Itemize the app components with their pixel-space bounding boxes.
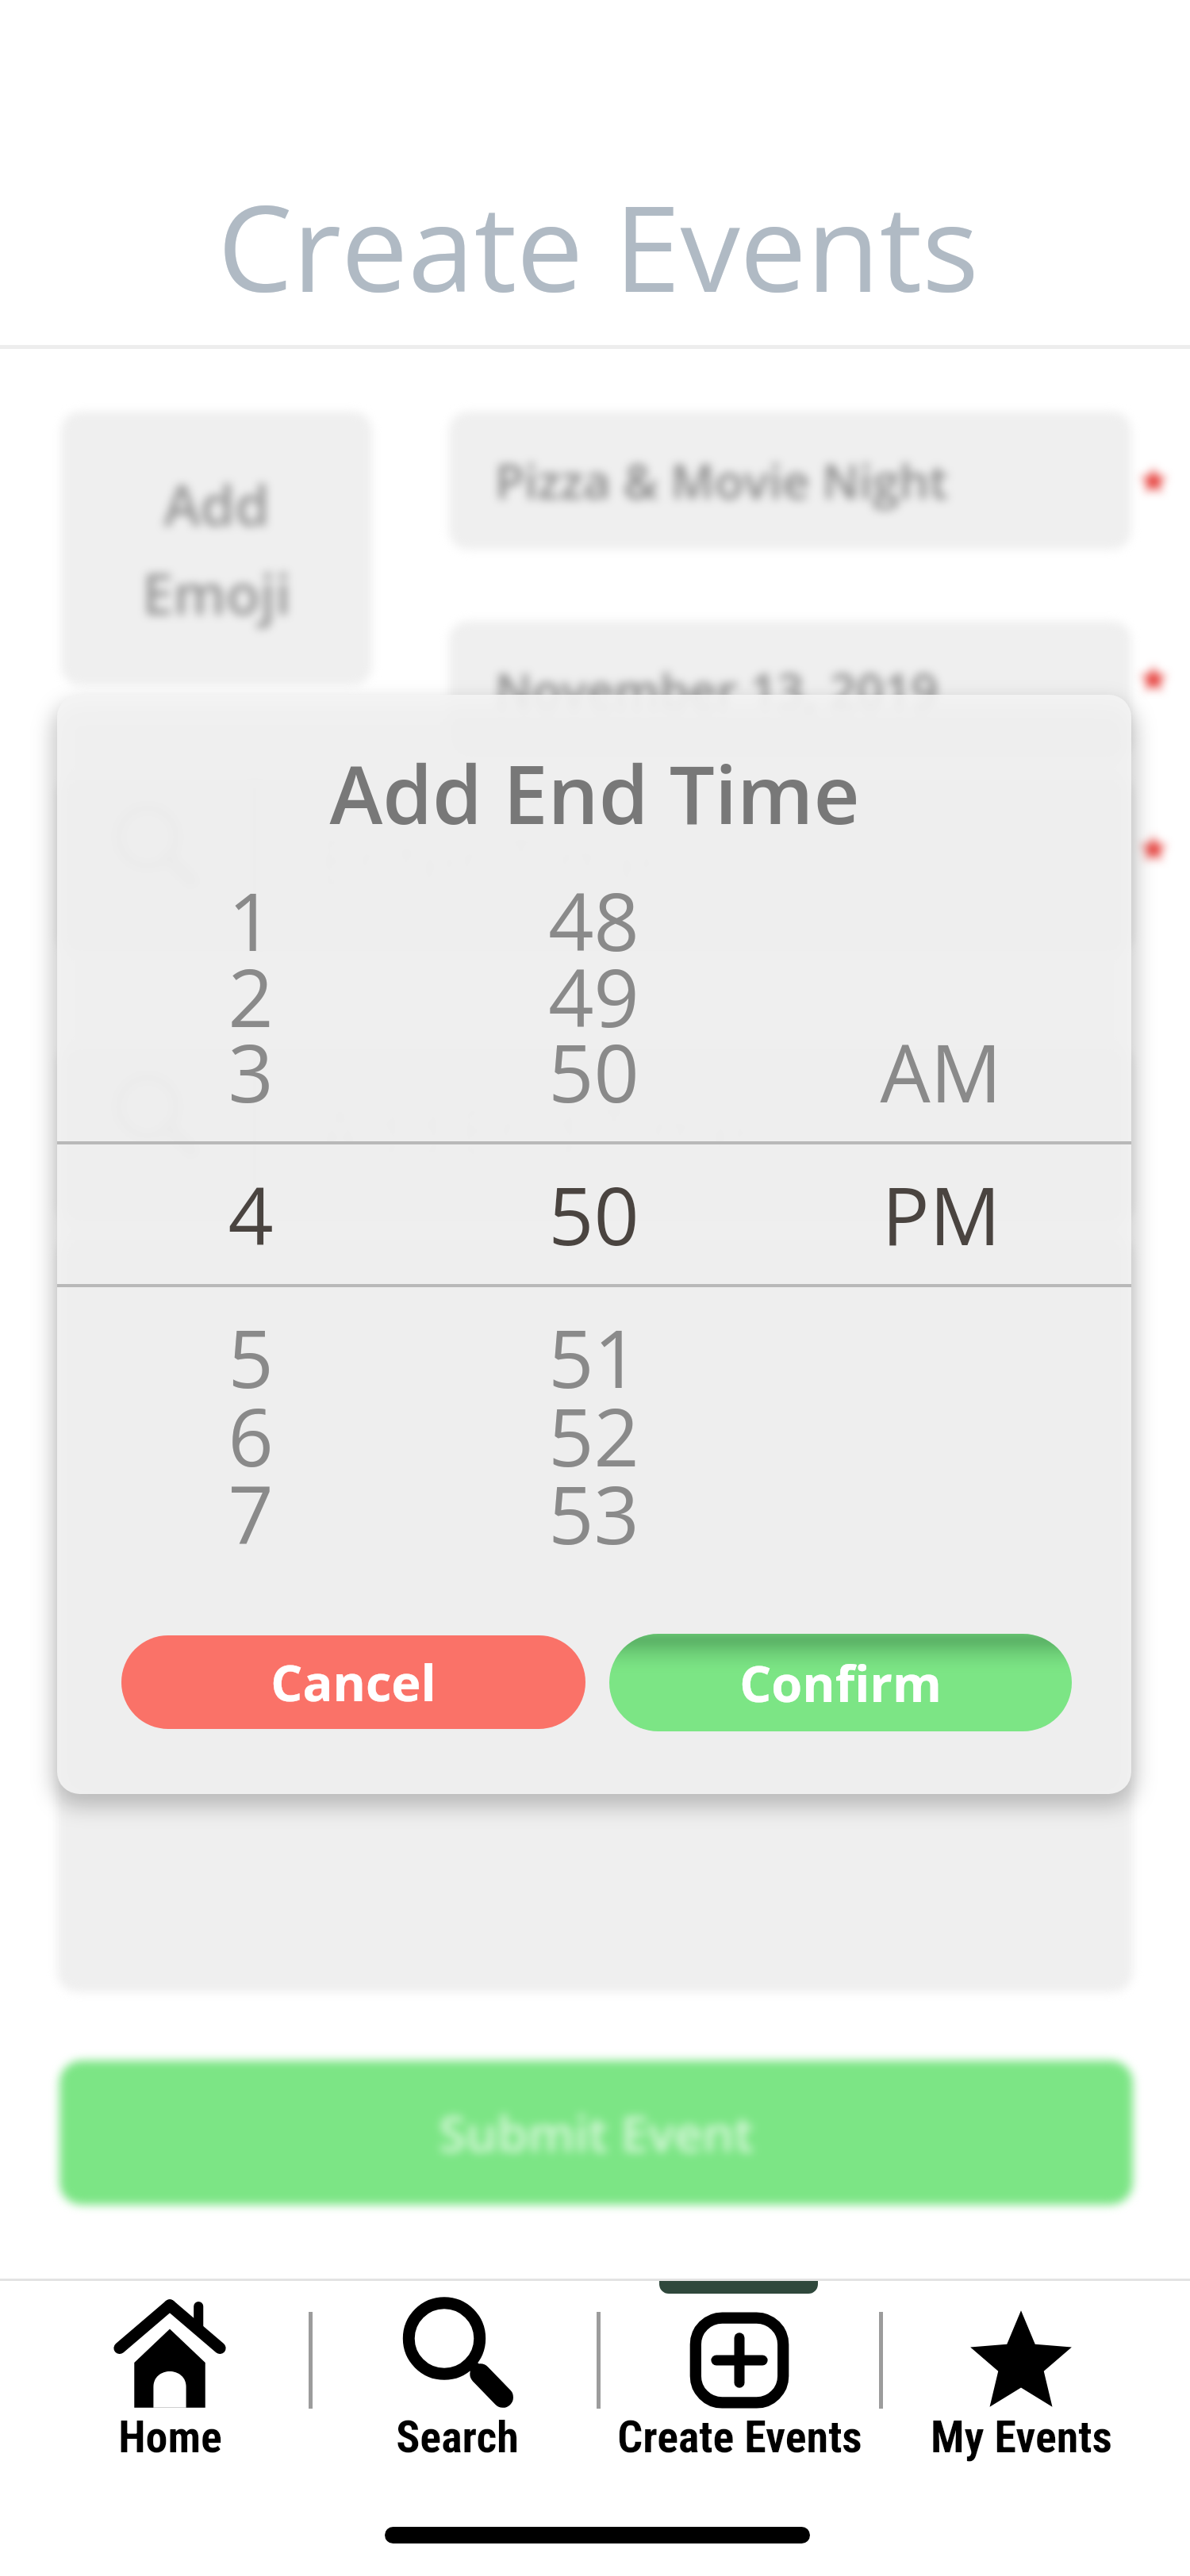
button[interactable] bbox=[57, 1237, 1133, 1992]
staticText: Create Events bbox=[617, 2411, 862, 2463]
staticText: PM bbox=[881, 1160, 1001, 1268]
staticText: 7 bbox=[228, 1459, 274, 1567]
staticText: 2 bbox=[228, 942, 274, 1050]
staticText: 50 bbox=[548, 1018, 639, 1125]
staticText: Add End Time bbox=[319, 1085, 749, 1175]
button[interactable]: Confirm bbox=[609, 1634, 1072, 1731]
button[interactable]: Create Events bbox=[605, 2288, 874, 2467]
staticText: 48 bbox=[548, 866, 639, 974]
staticText: 3 bbox=[228, 1018, 274, 1125]
staticText: Confirm bbox=[739, 1649, 942, 1717]
button[interactable]: Pizza & Movie Night bbox=[449, 412, 1131, 550]
button[interactable]: Add Emoji bbox=[61, 412, 372, 685]
button[interactable]: Submit Event bbox=[59, 2060, 1133, 2205]
staticText: AM bbox=[880, 1018, 1002, 1125]
staticText: Search bbox=[396, 2411, 519, 2463]
button[interactable]: Add End Time bbox=[57, 1047, 1133, 1223]
staticText: 49 bbox=[548, 942, 639, 1050]
staticText: 53 bbox=[548, 1459, 639, 1567]
button[interactable]: November 13, 2019 bbox=[449, 621, 1131, 759]
staticText: Home bbox=[118, 2411, 222, 2463]
button[interactable]: Cancel bbox=[121, 1635, 585, 1729]
staticText: Submit Event bbox=[439, 2099, 754, 2166]
staticText: 52 bbox=[548, 1382, 639, 1489]
button[interactable]: My Events bbox=[886, 2288, 1156, 2467]
other: My Events bbox=[972, 2314, 1070, 2410]
button[interactable]: Enter Time bbox=[57, 777, 1133, 953]
staticText: My Events bbox=[931, 2411, 1112, 2463]
button[interactable]: Home bbox=[35, 2288, 305, 2467]
staticText: 51 bbox=[548, 1303, 639, 1411]
staticText: Add End Time bbox=[329, 738, 860, 848]
staticText: 1 bbox=[228, 866, 274, 974]
other: Search bbox=[405, 2302, 518, 2413]
staticText: 50 bbox=[548, 1160, 639, 1268]
staticText: Create Events bbox=[217, 165, 979, 327]
staticText: Enter Time bbox=[319, 815, 655, 906]
other: Home bbox=[113, 2297, 226, 2409]
staticText: Pizza & Movie Night bbox=[495, 448, 949, 513]
staticText: November 13, 2019 bbox=[495, 657, 939, 723]
staticText: 4 bbox=[228, 1160, 274, 1268]
staticText: 5 bbox=[228, 1303, 274, 1411]
other: Create Events bbox=[690, 2313, 789, 2408]
button[interactable]: Search bbox=[327, 2288, 597, 2467]
staticText: Add Emoji bbox=[142, 466, 291, 631]
staticText: 6 bbox=[228, 1382, 274, 1489]
staticText: Cancel bbox=[271, 1648, 436, 1716]
